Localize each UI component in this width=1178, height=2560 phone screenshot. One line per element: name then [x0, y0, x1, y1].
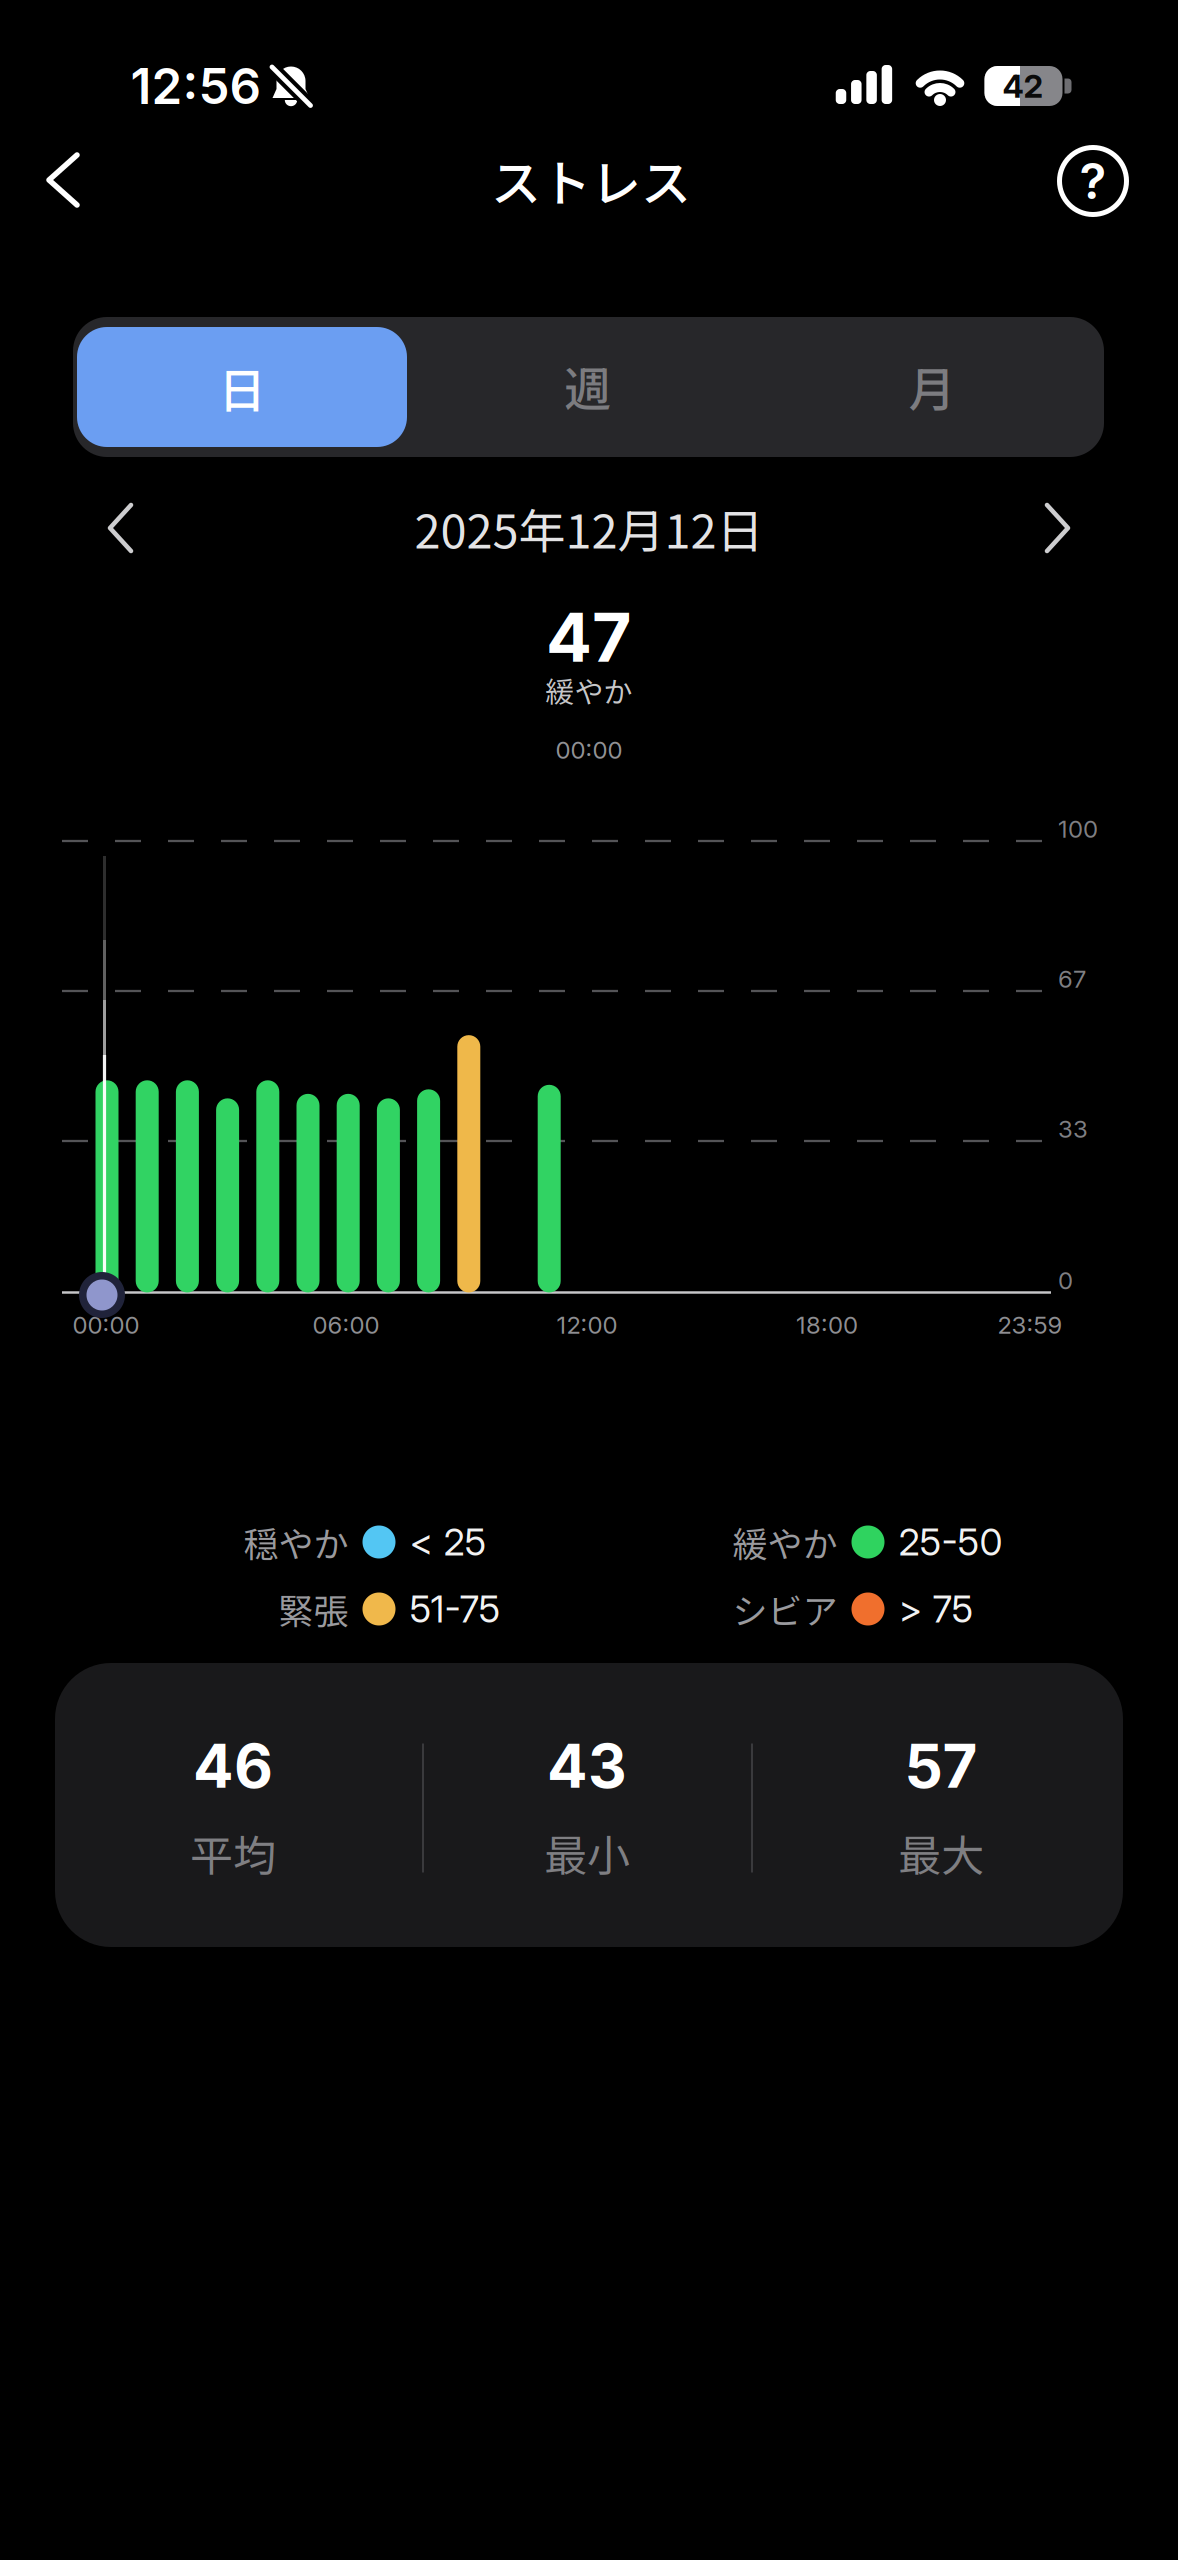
staticText: 月 [908, 352, 955, 420]
staticText: 46 [193, 1731, 273, 1801]
staticText: 67 [1058, 965, 1086, 993]
staticText: 0 [1058, 1266, 1073, 1295]
staticText: 12:56 [130, 57, 261, 115]
staticText: 12:00 [556, 1311, 617, 1339]
staticText: 18:00 [796, 1311, 858, 1339]
staticText: 42 [1002, 67, 1043, 105]
staticText: 57 [904, 1731, 977, 1801]
staticText: 51-75 [409, 1587, 500, 1631]
staticText: 23:59 [997, 1311, 1062, 1339]
staticText: 00:00 [555, 736, 622, 764]
staticText: 43 [547, 1731, 627, 1801]
staticText: 緩やか [732, 1517, 837, 1567]
staticText: > 75 [898, 1587, 973, 1631]
staticText: 100 [1058, 815, 1098, 843]
staticText: 2025年12月12日 [414, 494, 763, 562]
staticText: ストレス [491, 144, 691, 216]
staticText: < 25 [409, 1520, 486, 1564]
staticText: 最大 [898, 1822, 984, 1884]
button[interactable]: Next day [1023, 488, 1093, 568]
staticText: 日 [218, 353, 265, 421]
staticText: 穏やか [243, 1517, 348, 1567]
staticText: 平均 [190, 1822, 276, 1884]
button[interactable]: Help [1048, 136, 1138, 226]
staticText: シビア [732, 1584, 837, 1634]
staticText: 00:00 [72, 1311, 139, 1339]
staticText: 06:00 [312, 1311, 379, 1339]
staticText: ? [1079, 152, 1106, 210]
staticText: 最小 [544, 1822, 630, 1884]
staticText: 週 [564, 352, 611, 420]
staticText: 47 [546, 597, 632, 677]
staticText: 33 [1058, 1115, 1088, 1143]
button[interactable]: Previous day [85, 488, 155, 568]
button[interactable]: Back [18, 135, 108, 225]
staticText: 緩やか [545, 669, 632, 711]
staticText: 緊張 [278, 1584, 348, 1634]
staticText: 25-50 [898, 1520, 1002, 1564]
button[interactable]: 日 [77, 327, 407, 447]
button[interactable]: 月 [760, 316, 1103, 456]
button[interactable]: 週 [416, 316, 759, 456]
